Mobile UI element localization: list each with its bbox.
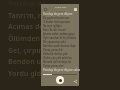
staticText: Nerede çok kötüye işi [43, 60, 72, 64]
staticText: Yavaş yavaş bir [43, 48, 63, 52]
staticText: Yalnızlık denizi yok [43, 52, 68, 56]
button[interactable]: Play [56, 76, 64, 84]
staticText: Yorulup da yere düşme sakın [43, 68, 81, 72]
staticText: Beni de alır mısın? [43, 28, 67, 32]
staticText: Ölümden g [8, 34, 47, 44]
staticText: Yordu gide [8, 69, 46, 79]
staticText: ŞARKI SÖZ [55, 6, 67, 9]
staticText: Gel, çırpın [8, 46, 44, 56]
staticText: O kadar korkuyorum yanmaya [43, 20, 81, 24]
staticText: Sezen Aksu [55, 10, 66, 13]
staticText: Anamı anlat onlara gayrı [43, 32, 75, 36]
button[interactable]: Back [43, 7, 48, 12]
staticText: Hiçbir şey yok artık bu [43, 56, 72, 60]
staticText: Tanrı'm, reh [8, 11, 50, 21]
staticText: Yorulup da yere düşme [43, 12, 73, 16]
staticText: Bu gurbet burası acı [43, 16, 69, 20]
button[interactable]: Share [73, 79, 78, 84]
staticText: Bendon uzak dursun diye [43, 44, 76, 48]
staticText: Nereye iyiliğin [43, 24, 62, 28]
button[interactable]: Album art [73, 7, 78, 12]
staticText: Yavaş yavaş dur [43, 64, 64, 68]
staticText: Acımas dev [8, 22, 48, 32]
staticText: Öyle sandım ki hiç bitmez [43, 36, 77, 40]
staticText: Bendon uza [8, 57, 49, 67]
staticText: Bir yaşanmış eski [43, 40, 66, 44]
staticText: Yorulup da [8, 0, 46, 9]
